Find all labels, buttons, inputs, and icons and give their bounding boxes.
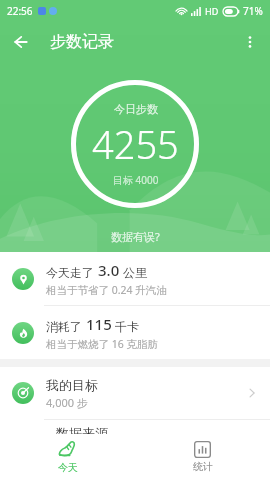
button[interactable]: 今天走了 <box>0 252 270 305</box>
button[interactable]: 数据有误? <box>101 226 170 247</box>
staticText: 3.0 <box>98 260 120 280</box>
button[interactable]: 消耗了 <box>0 306 270 359</box>
staticText: 今天走了 <box>46 264 98 280</box>
staticText: 4255 <box>92 118 179 170</box>
staticText: 115 <box>86 314 112 334</box>
staticText: 千卡 <box>112 318 140 334</box>
staticText: 统计 <box>193 460 213 473</box>
staticText: 71% <box>243 4 263 18</box>
button[interactable]: 我的目标 <box>0 367 270 419</box>
staticText: 相当于燃烧了 16 克脂肪 <box>46 337 158 351</box>
staticText: HD <box>205 5 219 17</box>
button[interactable]: 今天 <box>0 434 135 480</box>
button[interactable]: 数据来源 <box>0 420 270 446</box>
staticText: 消耗了 <box>46 318 86 334</box>
button[interactable]: Back <box>0 22 40 62</box>
staticText: 公里 <box>120 264 148 280</box>
staticText: 22:56 <box>7 4 33 18</box>
staticText: 步数记录 <box>50 32 114 52</box>
staticText: 今日步数 <box>114 102 158 116</box>
button[interactable]: 统计 <box>135 434 270 480</box>
staticText: 今天 <box>58 461 78 474</box>
staticText: 数据有误? <box>111 229 160 244</box>
button[interactable]: More options <box>230 22 270 62</box>
staticText: 我的目标 <box>46 377 98 393</box>
staticText: 数据来源 <box>56 425 108 441</box>
staticText: 目标 4000 <box>113 173 159 187</box>
staticText: 相当于节省了 0.24 升汽油 <box>46 283 167 297</box>
staticText: 4,000 步 <box>46 395 88 410</box>
